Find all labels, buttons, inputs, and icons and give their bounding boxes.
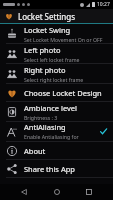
button[interactable]: Right photo [0, 64, 113, 83]
button[interactable]: Locket Swing [0, 24, 113, 43]
button[interactable]: Choose Locket Design [0, 84, 113, 101]
staticText: 10:27 [97, 1, 110, 8]
staticText: AntiAliasing [24, 122, 66, 132]
button[interactable]: AntiAliasing enabled [99, 127, 108, 136]
staticText: Share this App [24, 164, 75, 174]
button[interactable]: AntiAliasing [0, 122, 113, 141]
button[interactable]: Left photo [0, 44, 113, 63]
staticText: Set Locket Movement On or OFF [24, 36, 103, 43]
staticText: About [24, 146, 46, 156]
staticText: Left photo [24, 45, 61, 55]
staticText: Select right locket frame [24, 76, 84, 83]
button[interactable]: Recent apps [81, 184, 97, 200]
button[interactable]: Share this App [0, 160, 113, 177]
staticText: Select left locket frame [24, 56, 80, 63]
staticText: Locket Settings [18, 11, 76, 22]
button[interactable]: Ambiance level [0, 102, 113, 121]
staticText: Enable Antialiasing for Optimal Quality [24, 133, 96, 141]
staticText: Locket Swing [24, 25, 71, 35]
staticText: Right photo [24, 65, 66, 75]
staticText: Ambiance level [24, 103, 77, 113]
button[interactable]: Home [49, 184, 65, 200]
staticText: Choose Locket Design [24, 88, 102, 98]
staticText: Brightness : 3 [24, 114, 58, 121]
button[interactable]: Back [16, 184, 32, 200]
button[interactable]: About [0, 142, 113, 159]
